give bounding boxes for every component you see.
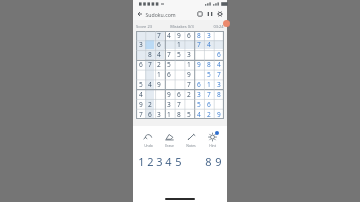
button[interactable]: 6 xyxy=(204,99,214,109)
button[interactable]: 1 xyxy=(137,154,146,167)
button[interactable]: 1 xyxy=(204,79,214,89)
button[interactable]: 4 xyxy=(154,49,164,59)
button[interactable]: 3 xyxy=(155,154,164,167)
button[interactable]: 7 xyxy=(214,69,224,79)
button[interactable] xyxy=(136,69,145,79)
button[interactable]: Erase xyxy=(159,131,179,148)
button[interactable]: 5 xyxy=(204,69,214,79)
button[interactable]: 6 xyxy=(194,79,204,89)
button[interactable] xyxy=(136,31,145,40)
button[interactable]: 5 xyxy=(173,154,183,167)
button[interactable] xyxy=(194,69,204,79)
button[interactable]: 9 xyxy=(174,31,184,40)
button[interactable] xyxy=(204,49,214,59)
button[interactable]: 3 xyxy=(154,109,164,119)
button[interactable]: 3 xyxy=(136,40,145,49)
button[interactable]: 7 xyxy=(136,109,145,119)
button[interactable]: 5 xyxy=(174,49,184,59)
button[interactable]: Sudoku.com xyxy=(145,8,195,20)
button[interactable]: 7 xyxy=(194,40,204,49)
button[interactable]: Pause xyxy=(205,9,215,19)
button[interactable]: 2 xyxy=(184,89,194,99)
button[interactable] xyxy=(154,89,164,99)
button[interactable]: 3 xyxy=(164,99,174,109)
button[interactable]: 8 xyxy=(145,49,154,59)
button[interactable] xyxy=(164,40,174,49)
button[interactable] xyxy=(136,49,145,59)
button[interactable]: Hint xyxy=(202,131,222,148)
button[interactable]: Assistant xyxy=(223,20,230,27)
button[interactable]: 9 xyxy=(214,109,224,119)
button[interactable]: 7 xyxy=(154,31,164,40)
button[interactable]: 7 xyxy=(164,49,174,59)
button[interactable] xyxy=(145,40,154,49)
button[interactable]: 4 xyxy=(194,109,204,119)
button[interactable]: 2 xyxy=(154,59,164,69)
button[interactable]: 9 xyxy=(213,154,223,167)
button[interactable]: 8 xyxy=(174,109,184,119)
button[interactable]: 7 xyxy=(204,89,214,99)
button[interactable] xyxy=(184,40,194,49)
button[interactable] xyxy=(174,69,184,79)
button[interactable]: 6 xyxy=(164,69,174,79)
button[interactable]: Notes xyxy=(181,131,201,148)
button[interactable] xyxy=(214,40,224,49)
button[interactable]: 6 xyxy=(145,109,154,119)
button[interactable]: 9 xyxy=(164,89,174,99)
button[interactable]: 1 xyxy=(164,109,174,119)
button[interactable]: 8 xyxy=(194,31,204,40)
button[interactable] xyxy=(174,59,184,69)
button[interactable] xyxy=(145,31,154,40)
button[interactable] xyxy=(154,99,164,109)
button[interactable]: 6 xyxy=(174,89,184,99)
button[interactable]: 2 xyxy=(204,109,214,119)
button[interactable] xyxy=(194,49,204,59)
button[interactable]: 9 xyxy=(194,59,204,69)
button[interactable]: 5 xyxy=(194,99,204,109)
button[interactable]: 6 xyxy=(214,49,224,59)
button[interactable]: Tabs xyxy=(195,9,205,19)
button[interactable]: 6 xyxy=(154,40,164,49)
button[interactable] xyxy=(145,89,154,99)
button[interactable]: 7 xyxy=(174,99,184,109)
button[interactable] xyxy=(164,79,174,89)
button[interactable]: 1 xyxy=(184,59,194,69)
button[interactable]: 6 xyxy=(184,31,194,40)
button[interactable] xyxy=(184,99,194,109)
button[interactable]: More options xyxy=(215,9,225,19)
button[interactable]: Back xyxy=(135,9,145,19)
button[interactable]: 5 xyxy=(136,79,145,89)
button[interactable]: 4 xyxy=(214,59,224,69)
button[interactable] xyxy=(214,31,224,40)
button[interactable] xyxy=(214,99,224,109)
button[interactable]: Undo xyxy=(138,131,158,148)
button[interactable]: 5 xyxy=(164,59,174,69)
button[interactable]: 2 xyxy=(145,99,154,109)
button[interactable] xyxy=(145,69,154,79)
button[interactable]: 7 xyxy=(145,59,154,69)
button[interactable] xyxy=(174,79,184,89)
button[interactable]: 9 xyxy=(136,99,145,109)
button[interactable]: 3 xyxy=(204,31,214,40)
button[interactable]: 4 xyxy=(136,89,145,99)
button[interactable]: 7 xyxy=(184,79,194,89)
button[interactable]: 3 xyxy=(214,79,224,89)
button[interactable]: 1 xyxy=(174,40,184,49)
button[interactable]: 4 xyxy=(204,40,214,49)
button[interactable]: 1 xyxy=(154,69,164,79)
button[interactable]: 9 xyxy=(184,69,194,79)
button[interactable]: 8 xyxy=(214,89,224,99)
button[interactable]: 8 xyxy=(203,154,213,167)
button[interactable]: 8 xyxy=(204,59,214,69)
button[interactable]: 5 xyxy=(184,109,194,119)
button[interactable]: 3 xyxy=(184,49,194,59)
button[interactable]: 4 xyxy=(164,31,174,40)
button[interactable]: 3 xyxy=(194,89,204,99)
button[interactable]: 9 xyxy=(154,79,164,89)
button[interactable]: 4 xyxy=(145,79,154,89)
button[interactable]: 2 xyxy=(146,154,155,167)
button[interactable]: 6 xyxy=(136,59,145,69)
button[interactable]: 4 xyxy=(164,154,173,167)
